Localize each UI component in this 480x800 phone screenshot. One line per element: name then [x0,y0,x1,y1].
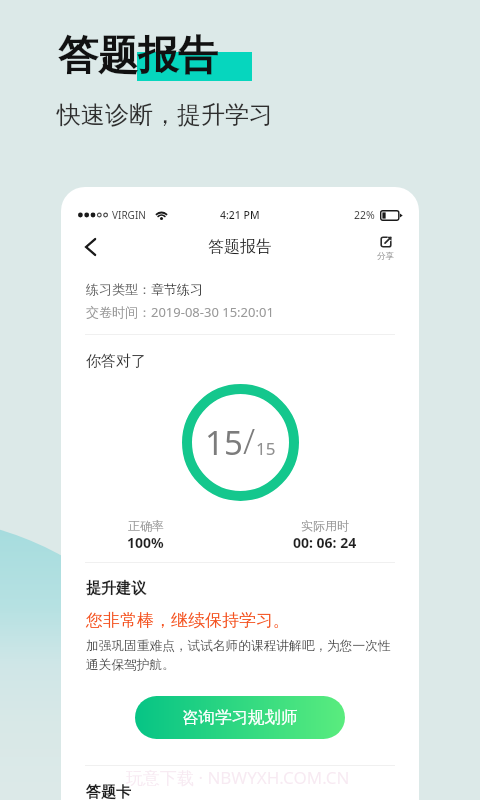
staticText: 玩意下载 · NBWYXH.COM.CN [126,766,350,789]
staticText: 正确率 [128,518,164,533]
staticText: 交卷时间： [86,304,151,320]
staticText: 00: 06: 24 [293,533,357,552]
button[interactable]: 咨询学习规划师 [135,696,345,739]
staticText: 快速诊断，提升学习 [57,100,273,130]
button[interactable]: Back [74,231,106,263]
staticText: 加强巩固重难点，试试名师的课程讲解吧，为您一次性通关保驾护航。 [86,638,391,673]
staticText: 答题报告 [58,30,218,80]
staticText: 100% [127,533,164,552]
staticText: 2019-08-30 15:20:01 [151,303,274,321]
staticText: 分享 [377,251,394,262]
staticText: VIRGIN [112,208,146,222]
staticText: 15 [256,437,276,460]
staticText: 4:21 PM [220,208,260,222]
staticText: / [243,417,256,465]
staticText: 章节练习 [151,281,203,297]
staticText: 22% [354,208,375,222]
staticText: 练习类型： [86,281,151,297]
staticText: 提升建议 [86,579,146,598]
button[interactable]: Share [375,234,396,264]
staticText: 答题报告 [208,237,272,257]
staticText: 你答对了 [86,352,146,371]
staticText: 您非常棒，继续保持学习。 [86,610,290,631]
staticText: 答题卡 [86,783,131,800]
staticText: 15 [205,420,243,465]
staticText: 咨询学习规划师 [182,707,298,728]
staticText: 实际用时 [301,518,349,533]
